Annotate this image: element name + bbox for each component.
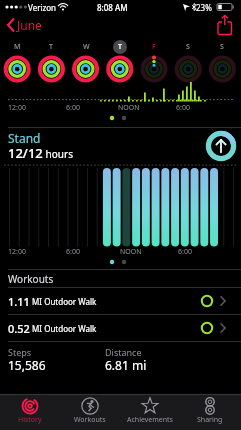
staticText: Distance [105,346,142,358]
staticText: Sharing [197,415,223,425]
button[interactable]: T [112,40,128,54]
staticText: Achievements [127,415,173,425]
staticText: 15,586 [8,357,46,373]
staticText: hours [43,147,73,161]
button[interactable]: F [146,40,162,54]
staticText: M [14,42,21,52]
button[interactable]: Achievements [120,394,180,430]
staticText: 6:00 [176,103,190,113]
staticText: 12/12 [8,144,43,162]
staticText: 6:00 [66,247,80,257]
button[interactable]: History [0,394,60,430]
staticText: MI Outdoor Walk [30,323,97,334]
button[interactable]: 0.52 [0,315,241,341]
button[interactable]: S [180,40,196,54]
staticText: 6.81 mi [105,357,147,373]
staticText: F [152,42,156,52]
staticText: T [118,42,122,52]
button[interactable] [212,13,238,37]
button[interactable] [205,130,237,162]
staticText: NOON [120,247,142,257]
staticText: 1.11 [8,294,30,309]
button[interactable]: M [9,40,25,54]
staticText: 6:00 [178,247,192,257]
button[interactable]: Workouts [60,394,120,430]
staticText: T [49,42,53,52]
staticText: 23% [196,2,212,13]
staticText: Workouts [74,415,106,425]
staticText: NOON [118,103,140,113]
staticText: W [83,42,90,52]
staticText: 6:00 [66,103,80,113]
button[interactable]: W [78,40,94,54]
button[interactable]: 1.11 [0,288,241,314]
staticText: Steps [8,346,32,358]
button[interactable]: T [43,40,59,54]
button[interactable]: S [214,40,230,54]
staticText: MI Outdoor Walk [30,296,97,307]
staticText: Stand [8,130,41,146]
staticText: S [186,42,190,52]
staticText: 12:00 [8,103,26,113]
button[interactable]: June [0,14,90,36]
staticText: 0.52 [8,321,30,336]
staticText: History [18,415,42,425]
staticText: Verizon [28,2,57,13]
staticText: 8:08 AM [97,2,128,13]
staticText: 12:00 [8,247,26,257]
staticText: S [220,42,224,52]
staticText: Workouts [8,272,54,286]
button[interactable]: Sharing [180,394,240,430]
staticText: June [17,17,42,33]
